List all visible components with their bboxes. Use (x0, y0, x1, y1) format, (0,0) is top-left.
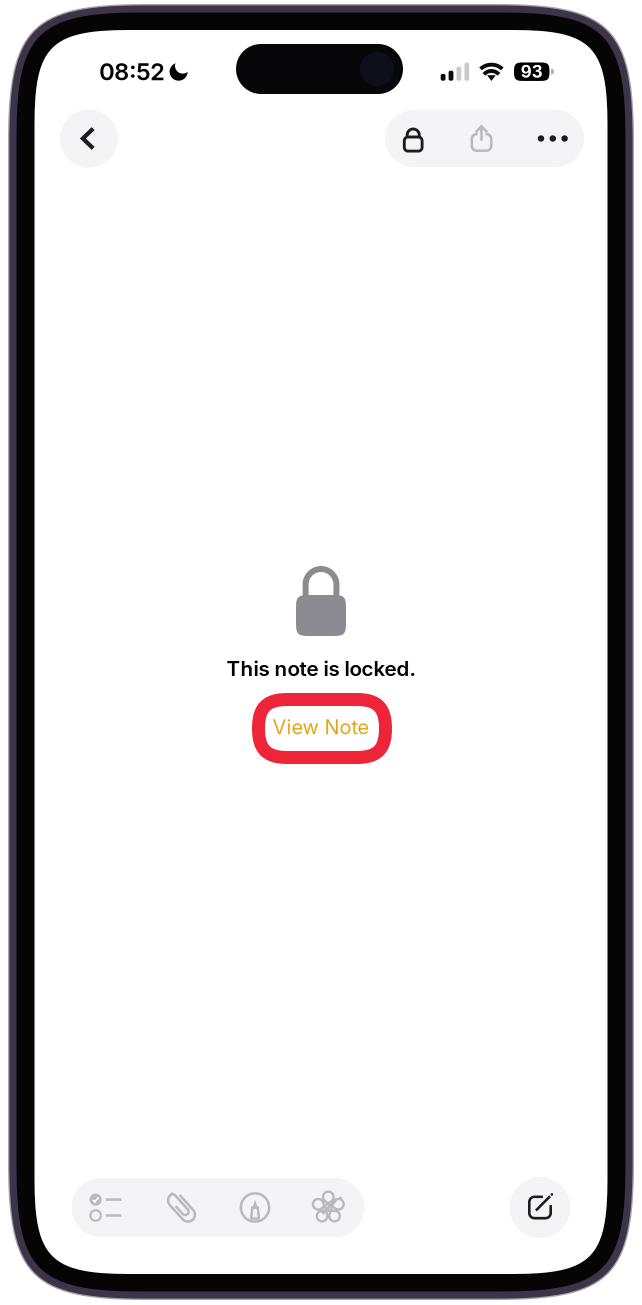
button[interactable]: View Note (251, 710, 391, 744)
button[interactable]: Markup (223, 1178, 286, 1237)
button[interactable]: Apple Intelligence (286, 1178, 364, 1237)
staticText: 08:52 (99, 57, 164, 86)
staticText: View Note (272, 715, 369, 739)
button[interactable]: Back (60, 109, 118, 167)
button[interactable]: Lock Note (385, 110, 441, 167)
button[interactable]: More (522, 110, 584, 167)
button[interactable]: Share (441, 110, 522, 167)
staticText: This note is locked. (226, 656, 415, 681)
button[interactable]: Attachment (139, 1178, 223, 1237)
button[interactable]: New Note (509, 1177, 570, 1238)
staticText: 93 (521, 61, 543, 82)
button[interactable]: Checklist (71, 1178, 139, 1237)
